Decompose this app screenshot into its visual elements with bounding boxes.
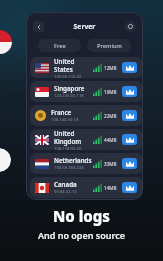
button[interactable]: Singapore (30, 81, 143, 102)
staticText: 33MB (104, 161, 117, 167)
staticText: 12MB (104, 65, 117, 71)
staticText: 22MB (104, 113, 117, 119)
button[interactable]: Canada (30, 177, 143, 198)
button[interactable]: United States (30, 57, 143, 78)
button[interactable]: Premium server (122, 134, 137, 145)
staticText: Premium (97, 42, 122, 50)
staticText: 149.36.132.42 (54, 74, 82, 78)
button[interactable]: Premium server (122, 158, 137, 169)
staticText: 124.233.65.118 (54, 93, 84, 99)
button[interactable]: Refresh (125, 21, 136, 32)
button[interactable]: Premium (87, 39, 131, 52)
staticText: And no open source (0, 229, 163, 241)
staticText: Singapore (54, 84, 85, 92)
staticText: 14MB (104, 185, 117, 191)
staticText: United Kingdom (54, 129, 93, 145)
button[interactable]: Premium server (122, 182, 137, 193)
staticText: 108.118.03.20 (54, 146, 82, 150)
staticText: 108.140.50.18 (51, 117, 79, 123)
button[interactable]: Back (33, 21, 44, 32)
staticText: 44MB (104, 137, 117, 143)
staticText: Canada (54, 180, 77, 188)
button[interactable]: Premium server (122, 86, 137, 97)
button[interactable]: United Kingdom (30, 129, 143, 150)
button[interactable]: Premium server (122, 110, 137, 121)
staticText: 158.58.184.234 (54, 165, 84, 171)
button[interactable]: France (30, 105, 143, 126)
button[interactable]: Premium server (122, 62, 137, 73)
button[interactable]: Free (38, 39, 81, 52)
staticText: Free (54, 42, 66, 50)
staticText: France (51, 108, 72, 116)
staticText: Netherlands (54, 156, 92, 164)
staticText: Server (44, 22, 125, 31)
staticText: United States (54, 57, 93, 73)
staticText: No logs (0, 206, 163, 226)
staticText: 90.84.32.12 (54, 189, 77, 195)
button[interactable]: Netherlands (30, 153, 143, 174)
staticText: 10MB (104, 89, 117, 95)
